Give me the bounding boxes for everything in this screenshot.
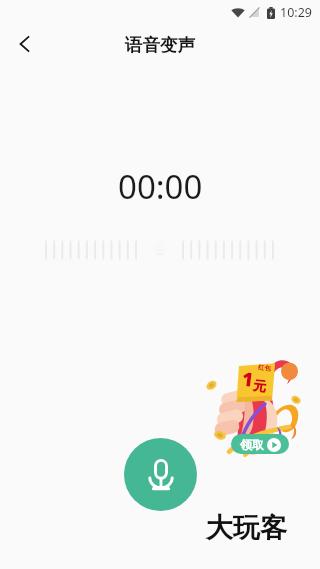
button[interactable]: 领取: [231, 434, 289, 454]
staticText: 语音变声: [125, 34, 195, 56]
staticText: 领取: [240, 437, 264, 452]
staticText: 元: [252, 377, 267, 394]
button[interactable]: Claim 1 yuan coupon: [203, 352, 303, 456]
staticText: 大玩客: [206, 511, 287, 545]
staticText: 10:29: [280, 4, 312, 21]
button[interactable]: Back: [3, 23, 45, 65]
staticText: 红包: [258, 363, 271, 373]
button[interactable]: Start recording: [124, 438, 197, 511]
staticText: 1: [240, 366, 256, 393]
staticText: 00:00: [118, 164, 203, 209]
